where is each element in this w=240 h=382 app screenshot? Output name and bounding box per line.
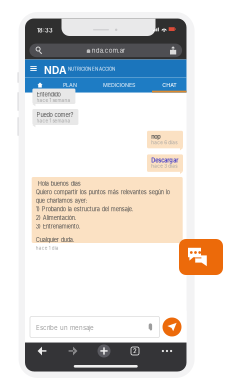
staticText: hace 1 semana bbox=[37, 97, 71, 103]
button[interactable]: Compartir bbox=[25, 42, 43, 55]
staticText: Quiero compartir los puntos más relevant… bbox=[36, 189, 170, 196]
staticText: nop bbox=[151, 133, 160, 140]
staticText: PLAN bbox=[63, 82, 77, 88]
staticText: Puedo comer? bbox=[37, 112, 74, 118]
button[interactable]: Buscar bbox=[25, 42, 45, 55]
staticText: que charlamos ayer: bbox=[36, 197, 88, 204]
button[interactable]: Adjuntar archivo bbox=[30, 316, 44, 337]
staticText: 2) Alimentación. bbox=[36, 214, 77, 221]
staticText: MEDICIONES bbox=[103, 82, 135, 88]
button[interactable]: Abrir chat bbox=[179, 239, 223, 275]
staticText: Cualquier duda. bbox=[36, 237, 75, 243]
staticText: NUTRICIÓN EN ACCIÓN bbox=[68, 66, 115, 72]
button[interactable]: Pestañas bbox=[25, 342, 55, 359]
staticText: Escribe un mensaje bbox=[36, 324, 94, 331]
staticText: NDA bbox=[44, 64, 67, 76]
staticText: Descargar bbox=[151, 157, 178, 164]
button[interactable]: Más opciones bbox=[25, 342, 55, 359]
button[interactable]: Menú bbox=[25, 59, 41, 77]
staticText: nda.com.ar bbox=[92, 47, 125, 54]
staticText: hace 3 días bbox=[151, 163, 177, 169]
staticText: 3) Entrenamiento. bbox=[36, 223, 81, 230]
staticText: 1) Probando la estructura del mensaje. bbox=[36, 206, 134, 213]
button[interactable]: Enviar bbox=[25, 310, 48, 333]
staticText: CHAT bbox=[162, 82, 176, 88]
staticText: Entendido bbox=[37, 91, 61, 98]
staticText: hace 6 días bbox=[151, 140, 177, 145]
staticText: Hola buenos días bbox=[36, 180, 81, 187]
button[interactable]: MEDICIONES bbox=[95, 77, 143, 92]
button[interactable]: PLAN bbox=[54, 77, 86, 92]
button[interactable]: CHAT bbox=[152, 77, 186, 92]
button[interactable]: Atrás bbox=[25, 342, 55, 359]
staticText: 18:33 bbox=[37, 27, 53, 34]
staticText: 2 bbox=[133, 347, 137, 355]
button[interactable]: Adelante bbox=[25, 342, 55, 359]
staticText: hace 1 semana bbox=[37, 118, 71, 123]
button[interactable]: Nueva pestaña bbox=[25, 342, 55, 359]
staticText: hace 1 día bbox=[36, 245, 59, 251]
button[interactable]: Inicio bbox=[26, 77, 53, 92]
